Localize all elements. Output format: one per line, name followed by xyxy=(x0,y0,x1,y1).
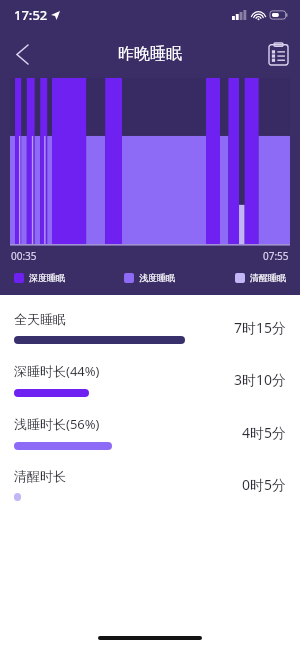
button[interactable]: 深睡时长(44%) xyxy=(0,360,300,399)
button[interactable]: 浅睡时长(56%) xyxy=(0,413,300,452)
staticText: 07:55 xyxy=(263,249,289,263)
staticText: 0时5分 xyxy=(241,475,286,494)
staticText: 清醒睡眠 xyxy=(250,272,286,283)
button[interactable]: 全天睡眠 xyxy=(0,309,300,346)
button[interactable]: Sleep report xyxy=(256,32,300,76)
staticText: 昨晚睡眠 xyxy=(118,44,182,64)
staticText: 浅度睡眠 xyxy=(139,272,175,283)
button[interactable]: 清醒时长 xyxy=(0,466,300,503)
staticText: 浅睡时长(56%) xyxy=(14,415,100,433)
staticText: 17:52 xyxy=(14,6,48,24)
staticText: 清醒时长 xyxy=(14,468,66,484)
staticText: 7时15分 xyxy=(233,318,286,337)
staticText: 3时10分 xyxy=(233,370,286,389)
staticText: 全天睡眠 xyxy=(14,311,66,327)
staticText: 00:35 xyxy=(11,249,37,263)
button[interactable]: Back xyxy=(0,32,44,76)
staticText: 4时5分 xyxy=(241,423,286,442)
staticText: 深度睡眠 xyxy=(29,272,65,283)
staticText: 深睡时长(44%) xyxy=(14,362,100,380)
